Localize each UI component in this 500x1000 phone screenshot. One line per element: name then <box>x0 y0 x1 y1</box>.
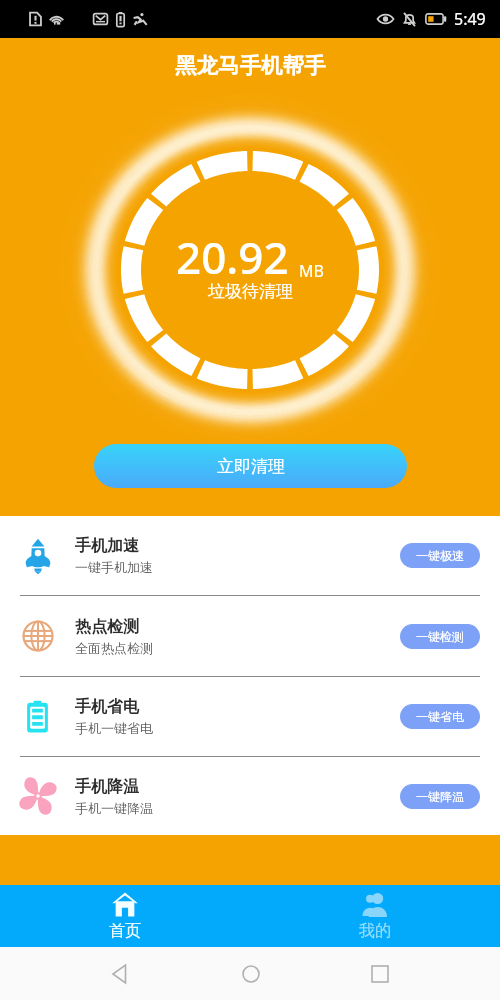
button[interactable]: 一键省电 <box>400 704 480 729</box>
staticText: 手机降温 <box>75 777 139 797</box>
staticText: 首页 <box>109 921 141 941</box>
other: Recents <box>372 966 388 982</box>
staticText: 一键省电 <box>416 709 464 724</box>
staticText: 热点检测 <box>75 617 139 637</box>
staticText: MB <box>299 260 324 282</box>
button[interactable]: 手机省电 <box>0 677 500 756</box>
other: Back <box>112 965 130 983</box>
staticText: 立即清理 <box>217 456 285 477</box>
button[interactable]: 一键极速 <box>400 543 480 568</box>
other: Home <box>242 965 260 983</box>
staticText: 5:49 <box>454 8 486 30</box>
staticText: 垃圾待清理 <box>208 281 293 302</box>
button[interactable]: 首页 <box>0 885 250 947</box>
staticText: 手机一键省电 <box>75 720 153 736</box>
staticText: 全面热点检测 <box>75 640 153 656</box>
staticText: 一键检测 <box>416 629 464 644</box>
staticText: 一键手机加速 <box>75 559 153 575</box>
staticText: 手机一键降温 <box>75 800 153 816</box>
staticText: 黑龙马手机帮手 <box>175 52 326 79</box>
button[interactable]: 我的 <box>250 885 500 947</box>
button[interactable]: 手机加速 <box>0 516 500 595</box>
button[interactable]: 一键检测 <box>400 624 480 649</box>
staticText: 一键降温 <box>416 789 464 804</box>
button[interactable]: 一键降温 <box>400 784 480 809</box>
staticText: 一键极速 <box>416 548 464 563</box>
staticText: 我的 <box>359 921 391 941</box>
staticText: 手机省电 <box>75 697 139 717</box>
staticText: 20.92 <box>176 227 289 287</box>
button[interactable]: 立即清理 <box>94 444 407 488</box>
staticText: 手机加速 <box>75 536 139 556</box>
button[interactable]: 热点检测 <box>0 596 500 676</box>
button[interactable]: 手机降温 <box>0 757 500 835</box>
